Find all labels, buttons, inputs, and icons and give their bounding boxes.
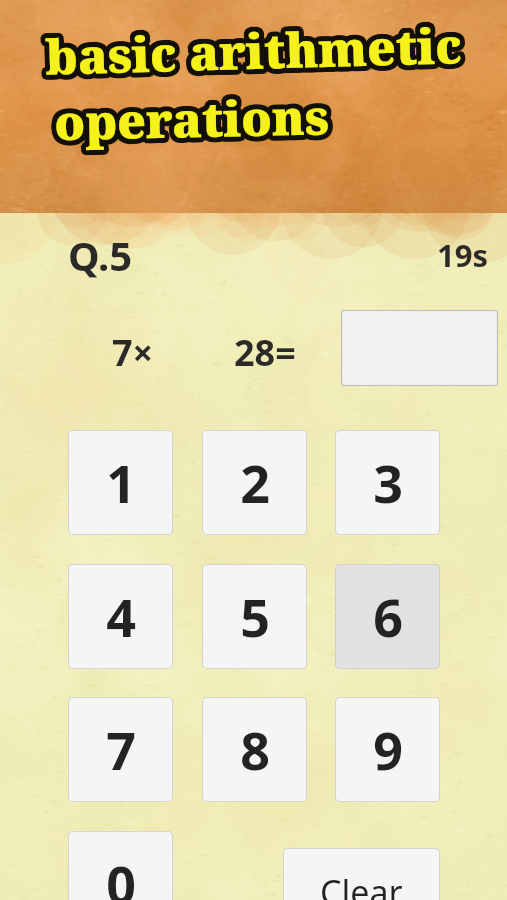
staticText: operations [53,78,330,149]
staticText: operations [51,81,328,152]
staticText: basic arithmetic [39,12,458,89]
staticText: operations [49,87,326,158]
staticText: operations [51,78,328,149]
button[interactable]: 4 [68,564,173,669]
staticText: basic arithmetic [41,13,460,90]
button[interactable]: 5 [202,564,307,669]
staticText: basic arithmetic [47,11,466,88]
staticText: operations [57,87,334,158]
staticText: basic arithmetic [45,15,464,92]
staticText: basic arithmetic [46,17,465,94]
staticText: basic arithmetic [49,10,468,87]
staticText: operations [51,85,328,156]
staticText: 7 [106,714,136,785]
staticText: operations [54,86,331,157]
staticText: basic arithmetic [44,7,463,84]
staticText: 9 [373,714,403,785]
button[interactable]: Clear [283,848,440,900]
staticText: operations [48,85,325,156]
staticText: operations [58,85,335,156]
staticText: operations [58,83,335,154]
staticText: operations [56,84,333,155]
staticText: basic arithmetic [47,13,466,90]
staticText: basic arithmetic [42,7,461,84]
button[interactable]: Answer input [341,310,498,386]
button[interactable]: 6 [335,564,440,669]
staticText: operations [51,88,328,159]
button[interactable]: 0 [68,831,173,900]
staticText: basic arithmetic [39,10,458,87]
staticText: 4 [106,581,136,652]
staticText: basic arithmetic [39,14,458,91]
staticText: 6 [373,581,403,652]
staticText: operations [52,86,329,157]
staticText: basic arithmetic [40,8,459,85]
staticText: basic arithmetic [42,14,461,91]
staticText: operations [55,78,332,149]
staticText: basic arithmetic [46,7,465,84]
staticText: Clear [320,869,403,900]
staticText: basic arithmetic [48,8,467,85]
button[interactable]: 7 [68,697,173,802]
staticText: basic arithmetic [42,17,461,94]
staticText: operations [57,79,334,150]
staticText: operations [50,82,327,153]
staticText: basic arithmetic [42,14,461,91]
staticText: operations [56,82,333,153]
staticText: operations [52,80,329,151]
staticText: operations [53,88,330,159]
staticText: Q.5 [68,228,133,282]
staticText: 19s [437,234,489,276]
staticText: 3 [373,447,403,518]
staticText: operations [55,88,332,159]
staticText: basic arithmetic [44,12,463,89]
staticText: operations [51,85,328,156]
staticText: 28= [234,328,296,377]
staticText: operations [55,81,332,152]
staticText: 2 [240,447,270,518]
staticText: operations [58,81,335,152]
staticText: basic arithmetic [48,16,467,93]
staticText: basic arithmetic [42,10,461,87]
staticText: basic arithmetic [49,12,468,89]
staticText: basic arithmetic [41,11,460,88]
staticText: basic arithmetic [45,9,464,86]
staticText: basic arithmetic [46,10,465,87]
staticText: basic arithmetic [46,10,465,87]
staticText: basic arithmetic [44,17,463,94]
staticText: operations [53,83,330,154]
button[interactable]: 9 [335,697,440,802]
staticText: operations [51,81,328,152]
staticText: basic arithmetic [43,9,462,86]
staticText: operations [54,80,331,151]
staticText: 8 [240,714,270,785]
staticText: operations [48,83,325,154]
staticText: 0 [106,848,136,900]
staticText: operations [55,81,332,152]
staticText: basic arithmetic [40,16,459,93]
staticText: operations [49,79,326,150]
staticText: operations [48,81,325,152]
staticText: basic arithmetic [46,14,465,91]
staticText: basic arithmetic [42,10,461,87]
button[interactable]: 1 [68,430,173,535]
button[interactable]: 8 [202,697,307,802]
staticText: operations [55,85,332,156]
staticText: 7× [112,328,154,377]
button[interactable]: 3 [335,430,440,535]
staticText: 1 [106,447,136,518]
staticText: basic arithmetic [49,14,468,91]
staticText: operations [55,85,332,156]
staticText: basic arithmetic [43,15,462,92]
staticText: operations [50,84,327,155]
button[interactable]: 2 [202,430,307,535]
staticText: basic arithmetic [46,14,465,91]
staticText: 5 [240,581,270,652]
